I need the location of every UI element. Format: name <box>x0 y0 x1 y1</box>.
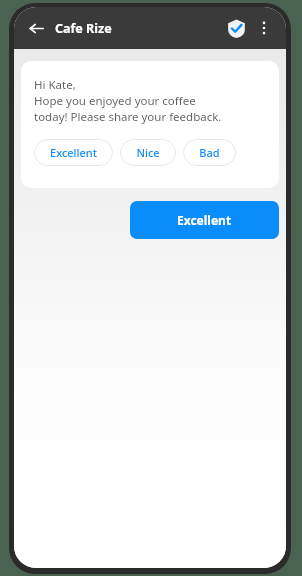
staticText: today! Please share your feedback. <box>34 109 222 125</box>
staticText: Excellent <box>50 145 97 160</box>
button[interactable]: More options <box>251 15 277 41</box>
staticText: Cafe Rize <box>55 20 112 37</box>
button[interactable]: Excellent <box>34 139 113 166</box>
staticText: Excellent <box>177 212 232 228</box>
staticText: Nice <box>136 145 160 160</box>
button[interactable]: Verified <box>223 15 249 41</box>
staticText: Hope you enjoyed your coffee <box>34 93 196 109</box>
staticText: Hi Kate, <box>34 77 76 93</box>
button[interactable]: Back <box>23 15 49 41</box>
button[interactable]: Nice <box>120 139 176 166</box>
staticText: Bad <box>199 145 220 160</box>
button[interactable]: Bad <box>183 139 236 166</box>
button[interactable]: Excellent <box>130 201 279 239</box>
